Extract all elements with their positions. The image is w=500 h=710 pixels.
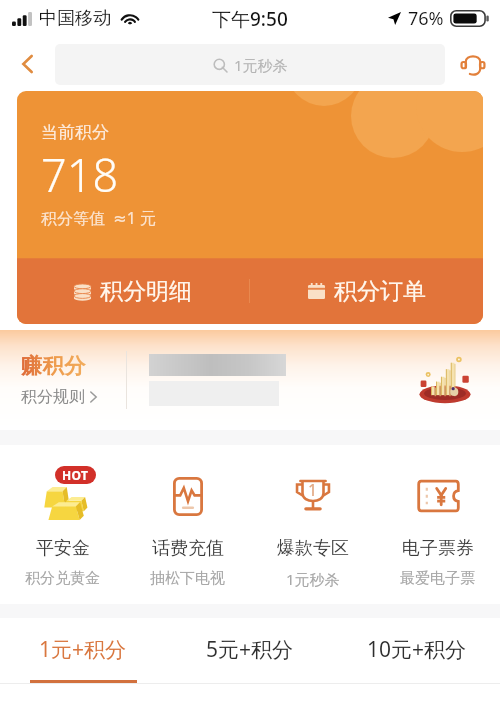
button[interactable]: 电子票券 bbox=[375, 445, 500, 604]
button[interactable]: 10元+积分 bbox=[333, 618, 500, 683]
button[interactable]: 1元秒杀 bbox=[55, 44, 445, 85]
staticText: 积分订单 bbox=[334, 277, 426, 306]
button[interactable]: Customer service bbox=[445, 37, 500, 91]
button[interactable]: 积分明细 bbox=[17, 258, 249, 324]
button[interactable]: 积分订单 bbox=[250, 258, 483, 324]
staticText: 1元+积分 bbox=[39, 635, 127, 664]
staticText: 10元+积分 bbox=[367, 635, 467, 664]
staticText: 最爱电子票 bbox=[400, 569, 475, 588]
staticText: HOT bbox=[62, 467, 89, 483]
button[interactable]: Back bbox=[0, 37, 55, 91]
staticText: 1 bbox=[308, 479, 318, 501]
staticText: 76% bbox=[408, 6, 444, 31]
staticText: 话费充值 bbox=[152, 537, 224, 560]
staticText: 爆款专区 bbox=[277, 537, 349, 560]
staticText: 中国移动 bbox=[39, 7, 111, 30]
staticText: 积分等值 ≈1 元 bbox=[41, 207, 157, 229]
staticText: 积分兑黄金 bbox=[25, 569, 100, 588]
staticText: 赚积分 bbox=[21, 353, 86, 379]
button[interactable]: HOT bbox=[0, 445, 125, 604]
button[interactable]: 1元+积分 bbox=[0, 618, 166, 683]
staticText: 抽松下电视 bbox=[150, 569, 225, 588]
staticText: 当前积分 bbox=[41, 122, 109, 143]
button[interactable]: 积分规则 bbox=[21, 387, 97, 407]
staticText: 积分规则 bbox=[21, 387, 85, 407]
staticText: 下午9:50 bbox=[212, 6, 288, 32]
button[interactable]: 5元+积分 bbox=[166, 618, 333, 683]
staticText: 平安金 bbox=[36, 537, 90, 560]
staticText: 电子票券 bbox=[402, 537, 474, 560]
staticText: 1元秒杀 bbox=[234, 55, 288, 75]
staticText: 1元秒杀 bbox=[286, 569, 340, 589]
staticText: 718 bbox=[41, 144, 119, 205]
button[interactable]: 1 bbox=[250, 445, 375, 604]
staticText: 积分明细 bbox=[100, 277, 192, 306]
staticText: 5元+积分 bbox=[206, 635, 294, 664]
button[interactable]: 话费充值 bbox=[125, 445, 250, 604]
